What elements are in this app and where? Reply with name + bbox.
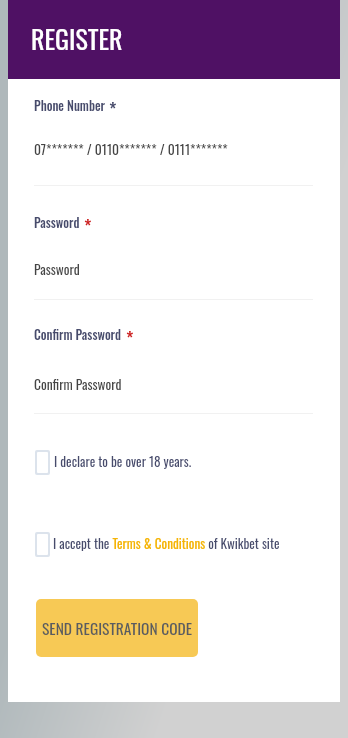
staticText: Confirm Password: [34, 374, 122, 394]
staticText: REGISTER: [31, 19, 123, 58]
staticText: *: [126, 325, 134, 352]
staticText: 07******* / 0110******* / 0111*******: [34, 139, 228, 159]
staticText: Phone Number: [34, 96, 105, 115]
button[interactable]: SEND REGISTRATION CODE: [36, 599, 198, 657]
staticText: I accept the Terms & Conditions of Kwikb…: [53, 533, 280, 553]
button[interactable]: [33, 528, 283, 560]
button[interactable]: [33, 447, 198, 479]
staticText: SEND REGISTRATION CODE: [42, 617, 192, 640]
staticText: I declare to be over 18 years.: [54, 451, 192, 471]
staticText: *: [109, 96, 117, 123]
staticText: *: [84, 213, 92, 240]
staticText: Password: [34, 259, 80, 279]
staticText: Confirm Password: [34, 325, 121, 344]
staticText: Password: [34, 213, 80, 232]
